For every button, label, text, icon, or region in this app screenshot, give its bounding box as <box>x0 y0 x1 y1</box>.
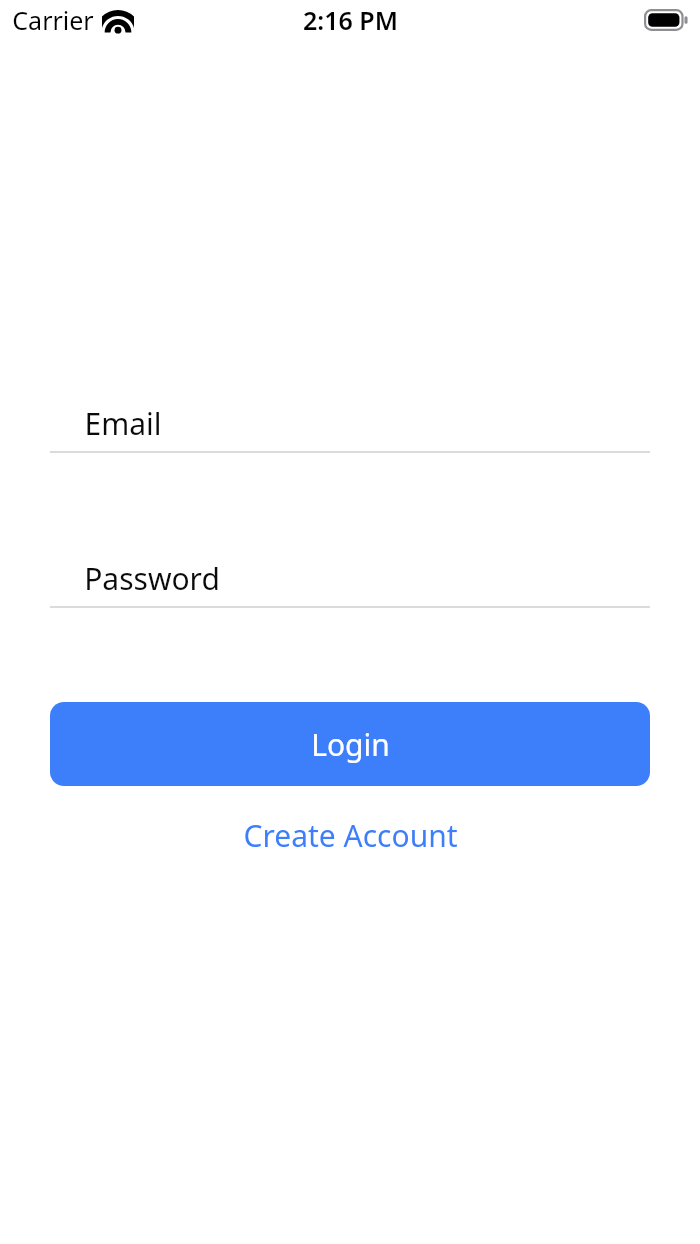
button[interactable]: Create Account <box>0 806 700 864</box>
button[interactable]: Email <box>50 396 650 453</box>
other: Wi-Fi signal <box>102 9 134 32</box>
button[interactable]: Password <box>50 551 650 608</box>
button[interactable]: Login <box>50 702 650 786</box>
other: Battery full <box>644 9 688 31</box>
staticText: Password <box>84 558 220 599</box>
staticText: Email <box>84 403 162 444</box>
staticText: Login <box>311 724 390 765</box>
staticText: Carrier <box>12 3 94 37</box>
staticText: Create Account <box>243 815 458 856</box>
staticText: 2:16 PM <box>303 3 398 37</box>
